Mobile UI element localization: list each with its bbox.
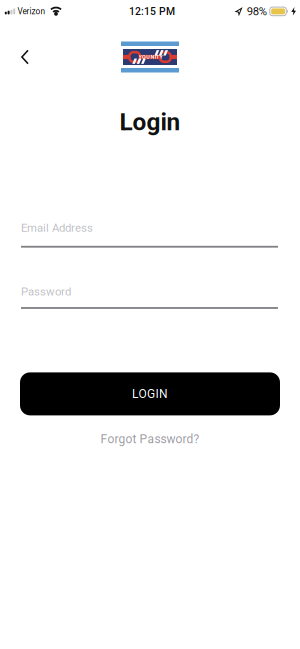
staticText: Login [119, 108, 180, 136]
staticText: 98% [247, 5, 267, 18]
staticText: LOGIN [132, 387, 168, 401]
staticText: Email Address [21, 221, 93, 234]
staticText: Verizon [18, 7, 46, 16]
staticText: 12:15 PM [129, 5, 175, 17]
staticText: YOUNITY [139, 54, 162, 60]
staticText: Forgot Password? [100, 432, 199, 446]
staticText: Password [21, 285, 71, 298]
